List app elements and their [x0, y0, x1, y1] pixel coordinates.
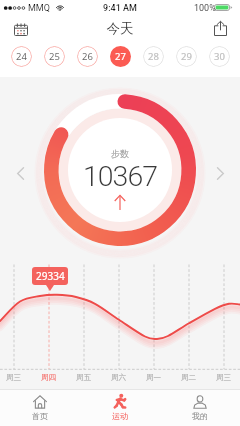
staticText: 今天	[0, 20, 240, 37]
button[interactable]: 30	[209, 46, 230, 67]
staticText: 周二	[181, 373, 197, 383]
staticText: 28	[148, 50, 159, 63]
button[interactable]: 周一	[141, 372, 167, 384]
staticText: 周三	[6, 373, 22, 383]
staticText: 9:41 AM	[0, 3, 240, 14]
button[interactable]: Calendar	[9, 17, 33, 41]
button[interactable]: 运动	[80, 389, 160, 426]
staticText: 周五	[76, 373, 92, 383]
button[interactable]: 24	[11, 46, 32, 67]
staticText: 27	[115, 50, 126, 63]
button[interactable]: 首页	[0, 389, 80, 426]
staticText: 我的	[192, 411, 208, 421]
button[interactable]: 29	[176, 46, 197, 67]
button[interactable]: 周五	[71, 372, 97, 384]
staticText: 周一	[146, 373, 162, 383]
staticText: 30	[214, 50, 225, 63]
button[interactable]: Share	[208, 16, 232, 40]
staticText: 24	[16, 50, 27, 63]
staticText: 首页	[32, 411, 48, 421]
button[interactable]: 周三	[1, 372, 27, 384]
staticText: 周三	[216, 373, 232, 383]
button[interactable]: 我的	[160, 389, 240, 426]
staticText: MMQ	[28, 3, 50, 14]
button[interactable]: 周二	[176, 372, 202, 384]
button[interactable]: 25	[44, 46, 65, 67]
staticText: 25	[49, 50, 60, 63]
staticText: 100%	[194, 3, 216, 14]
button[interactable]: Previous day	[9, 162, 31, 184]
staticText: 29334	[36, 269, 65, 283]
staticText: 26	[82, 50, 93, 63]
button[interactable]: 周六	[106, 372, 132, 384]
button[interactable]: 周三	[211, 372, 237, 384]
button[interactable]: 27	[110, 46, 131, 67]
staticText: 运动	[112, 411, 128, 421]
staticText: 步数	[111, 148, 129, 159]
button[interactable]: Next day	[209, 162, 231, 184]
staticText: 周六	[111, 373, 127, 383]
staticText: 10367	[83, 160, 158, 193]
button[interactable]: 26	[77, 46, 98, 67]
button[interactable]: 28	[143, 46, 164, 67]
button[interactable]: 周四	[36, 372, 62, 384]
staticText: 周四	[41, 373, 57, 383]
staticText: 29	[181, 50, 192, 63]
